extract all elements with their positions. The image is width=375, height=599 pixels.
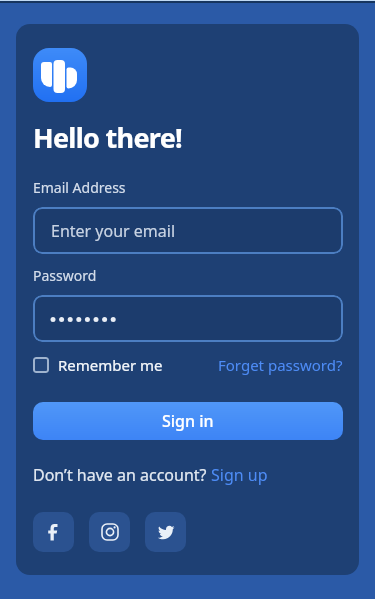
button[interactable]: Enter your email <box>33 207 343 254</box>
button[interactable] <box>33 295 343 342</box>
staticText: Enter your email <box>51 220 176 242</box>
staticText: Password <box>33 266 97 285</box>
staticText: Hello there! <box>33 119 183 156</box>
staticText: Sign in <box>162 410 214 432</box>
button[interactable] <box>89 512 130 552</box>
button[interactable] <box>33 48 87 102</box>
button[interactable] <box>145 512 186 552</box>
staticText: Remember me <box>58 355 163 375</box>
button[interactable]: Forget password? <box>218 355 343 375</box>
button[interactable]: Sign up <box>211 464 268 486</box>
staticText: Email Address <box>33 178 126 197</box>
button[interactable] <box>33 512 74 552</box>
staticText: Don’t have an account? <box>33 464 211 486</box>
button[interactable]: Sign in <box>33 402 343 440</box>
button[interactable]: Remember me <box>33 355 163 375</box>
staticText: Sign up <box>211 464 268 486</box>
staticText: Forget password? <box>218 355 343 375</box>
